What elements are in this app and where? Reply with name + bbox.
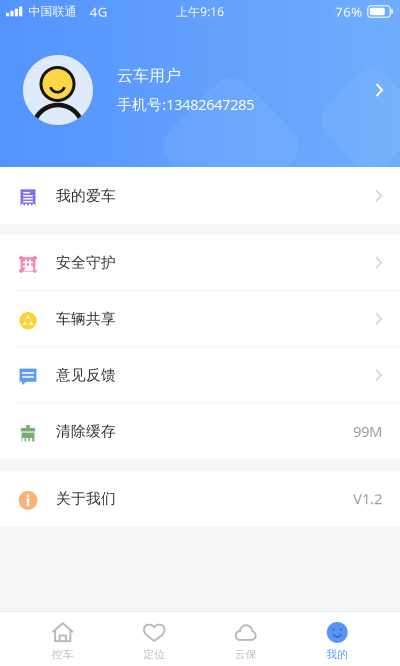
button[interactable]: 云车用户 [0, 40, 400, 140]
button[interactable]: 我的 [291, 612, 383, 666]
button[interactable]: 控车 [17, 612, 108, 666]
button[interactable]: 我的爱车 [0, 167, 400, 224]
staticText: 99M [353, 422, 382, 441]
staticText: 我的爱车 [56, 187, 116, 205]
staticText: 中国联通 [28, 4, 76, 19]
button[interactable]: 关于我们 [0, 470, 400, 526]
staticText: 云保 [235, 648, 257, 661]
staticText: 76% [335, 3, 362, 20]
staticText: 安全守护 [56, 254, 116, 272]
staticText: 关于我们 [56, 489, 116, 507]
staticText: V1.2 [353, 489, 382, 508]
button[interactable]: 车辆共享 [0, 291, 400, 346]
staticText: 意见反馈 [56, 366, 116, 384]
staticText: 上午9:16 [176, 3, 224, 19]
button[interactable]: 清除缓存 [0, 404, 400, 459]
staticText: 4G [89, 3, 107, 20]
staticText: 云车用户 [117, 66, 181, 86]
staticText: 手机号:13482647285 [117, 95, 254, 114]
button[interactable]: 定位 [108, 612, 200, 666]
button[interactable]: 意见反馈 [0, 347, 400, 403]
button[interactable]: 云保 [200, 612, 291, 666]
staticText: 控车 [52, 648, 74, 661]
button[interactable]: 安全守护 [0, 235, 400, 290]
staticText: 清除缓存 [56, 422, 116, 440]
staticText: 定位 [143, 648, 165, 661]
staticText: 车辆共享 [56, 310, 116, 328]
staticText: 我的 [326, 648, 348, 661]
